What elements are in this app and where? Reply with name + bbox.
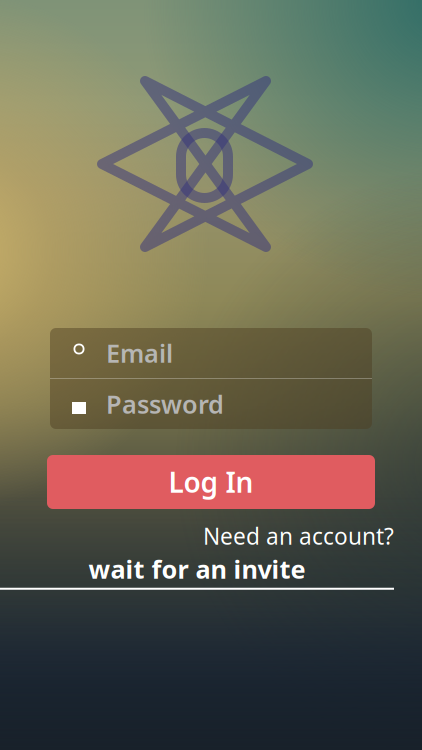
staticText: Password (106, 387, 224, 421)
button[interactable]: Email (50, 328, 372, 378)
staticText: Email (106, 336, 173, 370)
button[interactable]: Need an account? (0, 521, 422, 590)
button[interactable]: Password (50, 379, 372, 429)
staticText: wait for an invite (88, 552, 305, 586)
button[interactable]: Log In (47, 455, 375, 509)
staticText: Log In (168, 463, 253, 501)
staticText: Need an account? (203, 521, 394, 551)
